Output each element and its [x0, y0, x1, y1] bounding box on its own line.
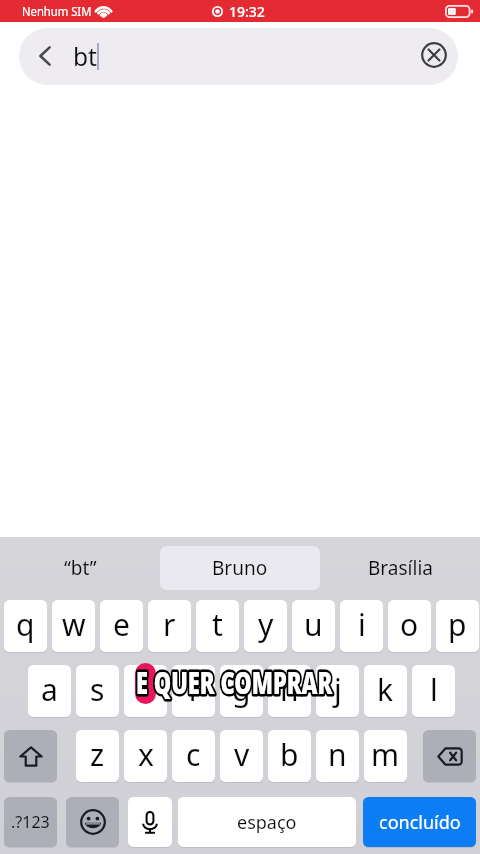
staticText: Nenhum SIM: [22, 3, 92, 20]
staticText: x: [138, 734, 154, 775]
button[interactable]: h: [268, 665, 311, 717]
staticText: i: [358, 604, 366, 645]
staticText: f: [188, 669, 199, 710]
button[interactable]: j: [316, 665, 359, 717]
button[interactable]: Clear search: [414, 35, 454, 75]
button[interactable]: Back: [25, 37, 65, 77]
button[interactable]: .?123: [4, 797, 57, 847]
staticText: r: [163, 604, 176, 645]
staticText: t: [212, 604, 223, 645]
button[interactable]: l: [412, 665, 455, 717]
button[interactable]: m: [364, 730, 407, 782]
staticText: l: [430, 669, 438, 710]
staticText: Brasília: [368, 555, 433, 581]
button[interactable]: g: [220, 665, 263, 717]
button[interactable]: p: [436, 600, 479, 652]
staticText: e: [113, 604, 130, 645]
button[interactable]: n: [316, 730, 359, 782]
button[interactable]: t: [196, 600, 239, 652]
button[interactable]: z: [76, 730, 119, 782]
staticText: Bruno: [212, 555, 268, 581]
button[interactable]: i: [340, 600, 383, 652]
staticText: s: [90, 669, 105, 710]
button[interactable]: o: [388, 600, 431, 652]
staticText: concluído: [379, 810, 461, 835]
staticText: h: [280, 669, 299, 710]
button[interactable]: v: [220, 730, 263, 782]
button[interactable]: r: [148, 600, 191, 652]
button[interactable]: d: [124, 665, 167, 717]
button[interactable]: b: [268, 730, 311, 782]
staticText: q: [16, 604, 35, 645]
staticText: n: [328, 734, 347, 775]
button[interactable]: u: [292, 600, 335, 652]
button[interactable]: k: [364, 665, 407, 717]
staticText: k: [377, 669, 394, 710]
button[interactable]: Bruno: [160, 546, 320, 590]
staticText: E QUER COMPRAR: [136, 662, 333, 702]
button[interactable]: Backspace: [423, 730, 476, 782]
button[interactable]: f: [172, 665, 215, 717]
staticText: y: [258, 604, 274, 645]
button[interactable]: c: [172, 730, 215, 782]
button[interactable]: Emoji: [66, 797, 119, 847]
staticText: o: [400, 604, 419, 645]
staticText: m: [371, 734, 400, 775]
staticText: E QUER COMPRAR: [136, 662, 333, 702]
staticText: “bt”: [64, 555, 97, 581]
staticText: g: [232, 669, 251, 710]
staticText: c: [186, 734, 201, 775]
button[interactable]: s: [76, 665, 119, 717]
button[interactable]: q: [4, 600, 47, 652]
button[interactable]: x: [124, 730, 167, 782]
staticText: bt: [73, 40, 97, 73]
button[interactable]: “bt”: [48, 555, 113, 581]
staticText: b: [280, 734, 299, 775]
staticText: p: [448, 604, 467, 645]
button[interactable]: a: [28, 665, 71, 717]
staticText: w: [62, 604, 86, 645]
staticText: espaço: [237, 810, 297, 835]
button[interactable]: e: [100, 600, 143, 652]
staticText: z: [90, 734, 105, 775]
button[interactable]: Brasília: [352, 555, 449, 581]
button[interactable]: w: [52, 600, 95, 652]
button[interactable]: concluído: [363, 797, 476, 847]
staticText: a: [41, 669, 58, 710]
staticText: u: [304, 604, 323, 645]
button[interactable]: Dictation: [128, 797, 172, 847]
staticText: v: [234, 734, 250, 775]
staticText: .?123: [11, 811, 50, 833]
button[interactable]: espaço: [178, 797, 356, 847]
button[interactable]: y: [244, 600, 287, 652]
button[interactable]: Shift: [4, 730, 57, 782]
staticText: d: [136, 669, 155, 710]
staticText: j: [334, 669, 342, 710]
staticText: 19:32: [229, 2, 265, 21]
